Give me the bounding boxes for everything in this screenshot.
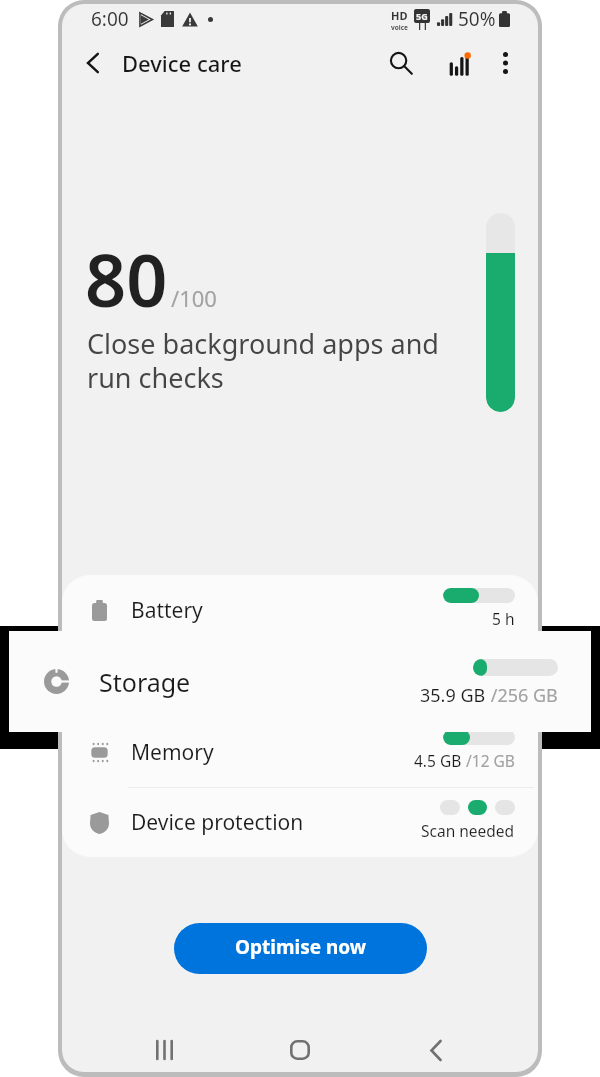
button[interactable]: Storage	[9, 631, 591, 732]
button[interactable]: Search	[380, 42, 422, 84]
button[interactable]: Back	[368, 1028, 504, 1072]
staticText: Optimise now	[235, 934, 367, 960]
staticText: Close background apps and run checks	[87, 325, 439, 396]
staticText: Storage	[99, 665, 191, 699]
staticText: 50%	[458, 6, 496, 32]
button[interactable]: Storage	[62, 646, 538, 716]
staticText: /256 GB	[453, 679, 515, 700]
button[interactable]: Home	[232, 1028, 368, 1072]
button[interactable]: Device protection	[62, 788, 538, 857]
staticText: /256 GB	[486, 683, 558, 708]
button[interactable]: Optimise now	[174, 923, 427, 974]
staticText: 6:00	[91, 6, 129, 32]
staticText: Storage	[131, 667, 208, 696]
staticText: Memory	[131, 738, 214, 767]
button[interactable]: Battery	[62, 575, 538, 645]
staticText: Battery	[131, 596, 203, 625]
staticText: 35.9 GB	[420, 683, 486, 708]
staticText: HD	[391, 8, 408, 23]
staticText: /12 GB	[462, 750, 515, 771]
staticText: /100	[171, 283, 217, 313]
staticText: 4.5 GB	[414, 750, 462, 771]
button[interactable]: More options	[486, 44, 524, 82]
staticText: voice	[391, 23, 408, 32]
staticText: Device protection	[131, 808, 304, 837]
staticText: Scan needed	[421, 820, 515, 841]
button[interactable]: Navigate up	[73, 43, 113, 83]
staticText: 35.9 GB	[396, 679, 453, 700]
staticText: 80	[85, 230, 168, 328]
button[interactable]: Recent apps	[96, 1028, 232, 1072]
button[interactable]: Usage statistics	[432, 42, 474, 84]
staticText: Device care	[122, 48, 242, 78]
staticText: 5G	[416, 10, 428, 22]
staticText: 5 h	[492, 608, 515, 629]
button[interactable]: Memory	[62, 717, 538, 787]
